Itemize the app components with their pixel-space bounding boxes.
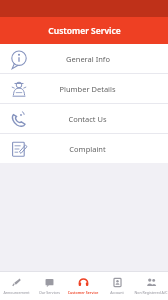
button[interactable]: Account <box>100 272 134 300</box>
staticText: Customer Service <box>66 290 100 295</box>
staticText: Plumber Details <box>59 84 116 94</box>
button[interactable]: Complaint <box>0 134 168 163</box>
staticText: Complaint <box>69 144 106 154</box>
staticText: Non Registered A/C <box>134 290 168 295</box>
staticText: Contact Us <box>68 114 107 124</box>
button[interactable]: Contact Us <box>0 104 168 133</box>
button[interactable]: Announcement <box>0 272 33 300</box>
staticText: Customer Service <box>48 25 121 37</box>
button[interactable]: Non Registered A/C <box>134 272 168 300</box>
button[interactable]: Plumber Details <box>0 74 168 103</box>
staticText: Announcement <box>0 290 33 295</box>
button[interactable]: General Info <box>0 44 168 73</box>
button[interactable]: Customer Service <box>66 272 100 300</box>
staticText: General Info <box>66 54 110 64</box>
staticText: Our Services <box>33 290 66 295</box>
staticText: Account <box>100 290 134 295</box>
button[interactable]: Our Services <box>33 272 66 300</box>
